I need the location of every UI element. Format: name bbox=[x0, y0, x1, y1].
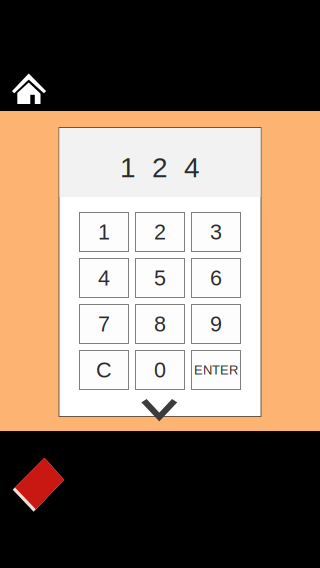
staticText: 5 bbox=[154, 266, 166, 290]
button[interactable]: 0 bbox=[135, 350, 185, 390]
button[interactable]: 2 bbox=[135, 212, 185, 252]
staticText: 6 bbox=[210, 266, 222, 290]
button[interactable]: 4 bbox=[79, 258, 129, 298]
staticText: 0 bbox=[154, 358, 166, 382]
button[interactable]: C bbox=[79, 350, 129, 390]
button[interactable]: 9 bbox=[191, 304, 241, 344]
button[interactable]: Home bbox=[0, 3, 57, 107]
button[interactable]: 5 bbox=[135, 258, 185, 298]
button[interactable]: 8 bbox=[135, 304, 185, 344]
button[interactable]: 6 bbox=[191, 258, 241, 298]
staticText: 1 2 4 bbox=[120, 152, 200, 183]
staticText: C bbox=[96, 358, 112, 382]
staticText: 8 bbox=[154, 312, 166, 336]
staticText: 9 bbox=[210, 312, 222, 336]
staticText: 1 bbox=[98, 220, 110, 244]
button[interactable]: 3 bbox=[191, 212, 241, 252]
staticText: 2 bbox=[154, 220, 166, 244]
button[interactable]: 7 bbox=[79, 304, 129, 344]
staticText: 4 bbox=[98, 266, 110, 290]
button[interactable]: ENTER bbox=[191, 350, 241, 390]
staticText: ENTER bbox=[194, 363, 238, 377]
staticText: 7 bbox=[98, 312, 110, 336]
staticText: 3 bbox=[210, 220, 222, 244]
button[interactable]: 1 bbox=[79, 212, 129, 252]
